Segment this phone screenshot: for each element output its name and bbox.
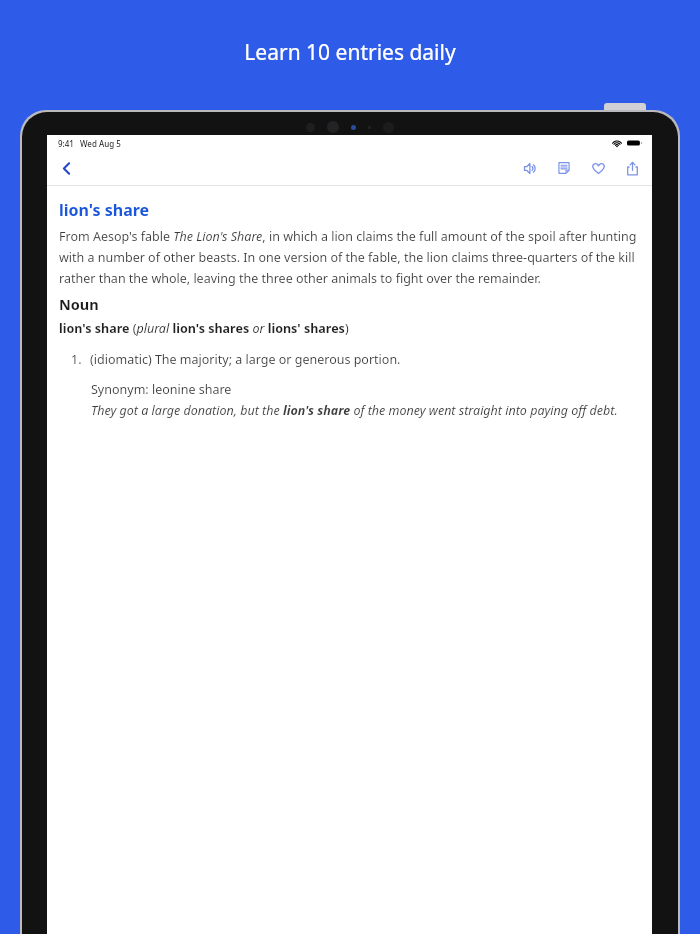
- staticText: Noun: [59, 294, 99, 314]
- button[interactable]: Favorite: [588, 158, 608, 178]
- button[interactable]: Back: [53, 155, 79, 181]
- button[interactable]: Share: [622, 158, 642, 178]
- button[interactable]: lion's share: [59, 199, 150, 221]
- staticText: From Aesop's fable The Lion's Share, in …: [59, 228, 640, 287]
- staticText: Wed Aug 5: [80, 138, 121, 149]
- staticText: (idiomatic) The majority; a large or gen…: [90, 351, 401, 368]
- button[interactable]: Pronounce: [520, 158, 540, 178]
- staticText: 9:41: [58, 138, 74, 149]
- staticText: lion's share (plural lion's shares or li…: [59, 320, 349, 337]
- staticText: Learn 10 entries daily: [244, 38, 456, 67]
- button[interactable]: Notes: [554, 158, 574, 178]
- staticText: 1.: [71, 351, 82, 368]
- staticText: They got a large donation, but the lion'…: [91, 402, 618, 419]
- staticText: Synonym: leonine share: [91, 381, 232, 398]
